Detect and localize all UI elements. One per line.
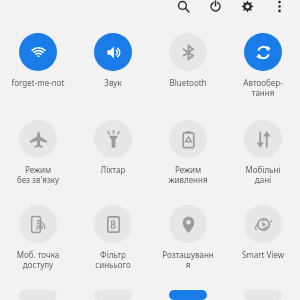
staticText: Режим живлення: [155, 164, 221, 185]
staticText: Режим без зв'язку: [5, 164, 71, 185]
button[interactable]: Quick setting: [230, 290, 296, 300]
staticText: Мобільні дані: [230, 164, 296, 185]
button[interactable]: Quick setting: [5, 290, 71, 300]
button[interactable]: Bluetooth: [155, 33, 221, 88]
button[interactable]: Smart View: [230, 205, 296, 260]
staticText: Звук: [80, 77, 146, 88]
button[interactable]: Power off: [202, 0, 228, 19]
button[interactable]: Power mode: [155, 120, 221, 185]
button[interactable]: Sound: [80, 33, 146, 88]
staticText: Smart View: [230, 249, 296, 260]
button[interactable]: Location: [155, 205, 221, 270]
button[interactable]: Airplane mode: [5, 120, 71, 185]
button[interactable]: Mobile hotspot: [5, 205, 71, 270]
button[interactable]: Auto rotate: [230, 33, 296, 98]
button[interactable]: Mobile data: [230, 120, 296, 185]
staticText: Автообер- тання: [230, 77, 296, 98]
button[interactable]: Search: [170, 0, 196, 19]
staticText: Ліхтар: [80, 164, 146, 175]
button[interactable]: Wi-Fi: [5, 33, 71, 88]
button[interactable]: Quick setting: [80, 290, 146, 300]
button[interactable]: Flashlight: [80, 120, 146, 175]
button[interactable]: Settings: [234, 0, 260, 19]
button[interactable]: More options: [266, 0, 292, 19]
staticText: Розташуванн я: [155, 249, 221, 270]
staticText: forget-me-not: [5, 77, 71, 88]
staticText: Фільтр синьього: [80, 249, 146, 270]
button[interactable]: Quick setting: [155, 290, 221, 300]
staticText: Моб. точка доступу: [5, 249, 71, 270]
staticText: Bluetooth: [155, 77, 221, 88]
button[interactable]: Blue light filter: [80, 205, 146, 270]
